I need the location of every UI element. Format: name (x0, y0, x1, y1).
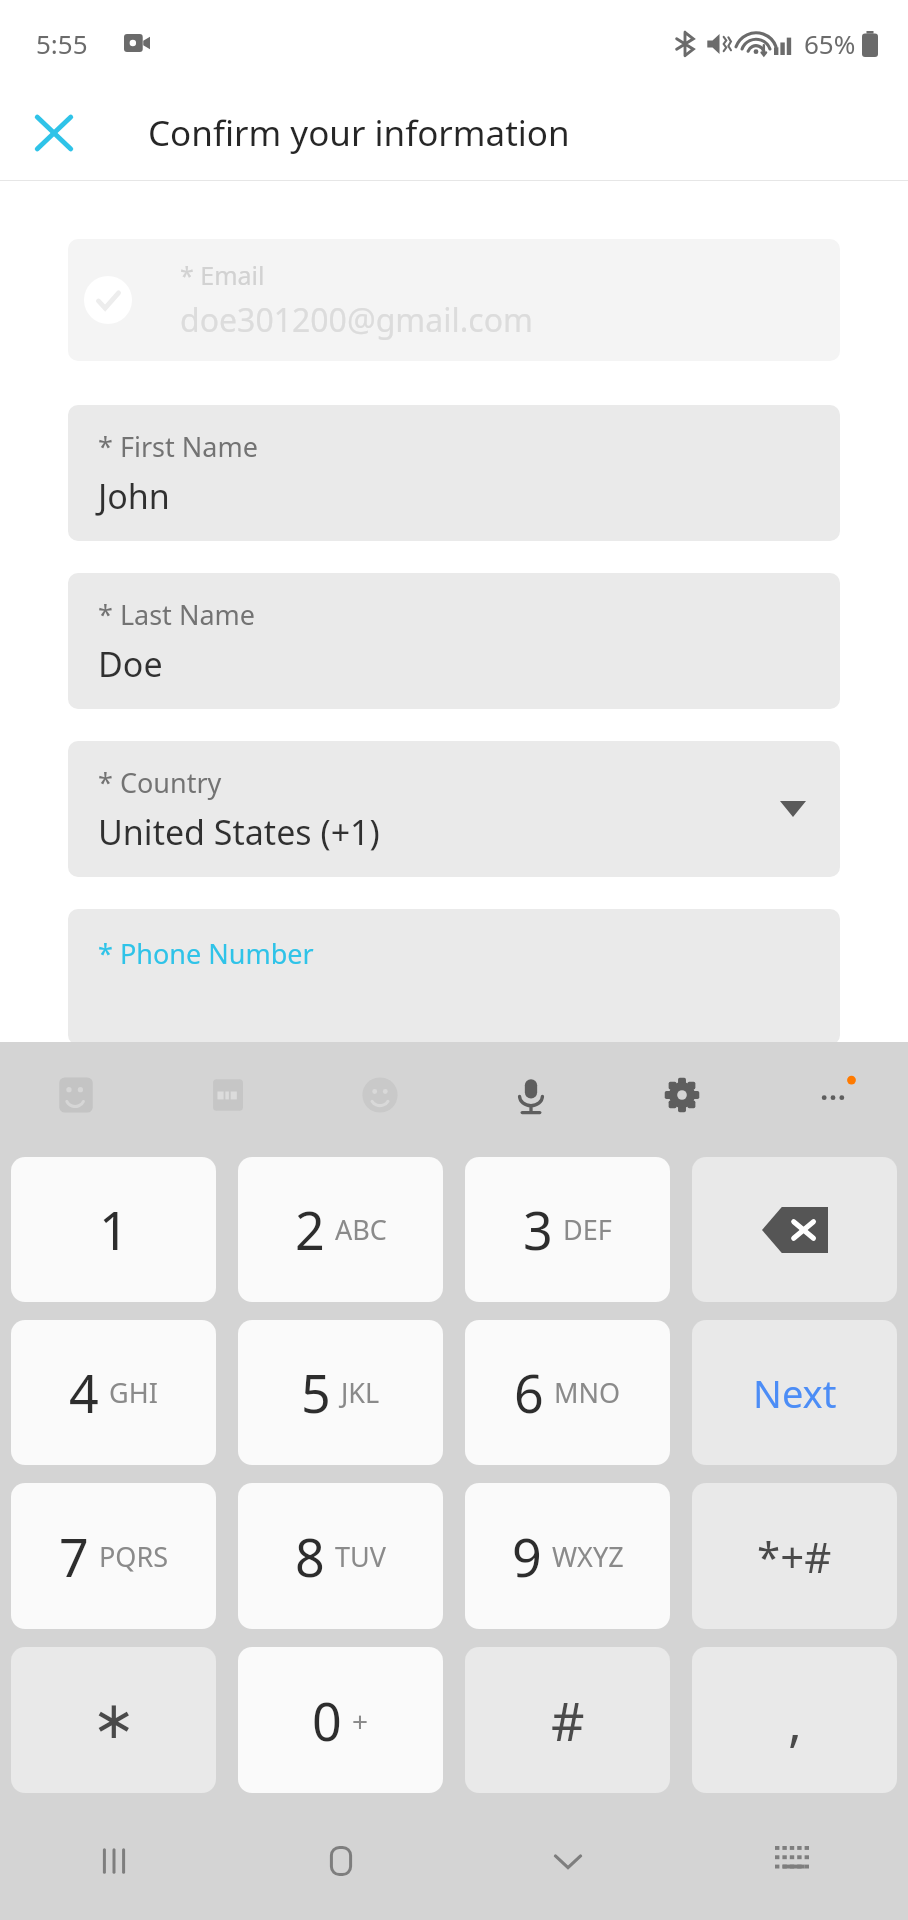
staticText: *+# (757, 1528, 832, 1585)
staticText: ABC (335, 1211, 387, 1248)
button[interactable]: GIF (152, 1042, 304, 1148)
staticText: MNO (554, 1374, 621, 1411)
staticText: 65% (804, 26, 856, 61)
staticText: 0 (312, 1685, 342, 1756)
button[interactable]: Voice input (455, 1042, 606, 1148)
staticText: 5 (301, 1357, 331, 1428)
staticText: , (788, 1685, 802, 1756)
button[interactable]: * Country (68, 741, 840, 877)
staticText: 1 (99, 1194, 129, 1265)
button[interactable]: 2 (238, 1157, 443, 1302)
staticText: * Phone Number (98, 935, 314, 972)
staticText: 4 (69, 1357, 99, 1428)
staticText: 5:55 (36, 26, 88, 61)
staticText: DEF (563, 1211, 612, 1248)
button[interactable]: More options (757, 1042, 908, 1148)
button[interactable]: , (692, 1647, 897, 1793)
button[interactable]: Home (227, 1802, 454, 1920)
staticText: WXYZ (552, 1538, 624, 1575)
staticText: doe301200@gmail.com (180, 298, 533, 342)
staticText: 3 (523, 1194, 553, 1265)
button[interactable]: Hide keyboard (454, 1802, 681, 1920)
staticText: United States (+1) (98, 809, 380, 855)
staticText: * Email (180, 258, 265, 292)
staticText: John (98, 473, 170, 519)
button[interactable]: Stickers (0, 1042, 152, 1148)
button[interactable]: Next (692, 1320, 897, 1465)
staticText: PQRS (99, 1538, 169, 1575)
staticText: # (551, 1685, 585, 1756)
button[interactable]: * First Name (68, 405, 840, 541)
staticText: GHI (109, 1374, 158, 1411)
button[interactable]: Close (12, 91, 96, 175)
other: Select country (780, 801, 806, 817)
staticText: 7 (59, 1521, 89, 1592)
button[interactable]: Keyboard settings (606, 1042, 757, 1148)
staticText: Confirm your information (148, 109, 570, 157)
button[interactable]: 9 (465, 1483, 670, 1629)
staticText: JKL (341, 1374, 380, 1411)
staticText: TUV (335, 1538, 386, 1575)
button[interactable]: Recents (0, 1802, 227, 1920)
button[interactable]: * Email (68, 239, 840, 361)
button[interactable]: *+# (692, 1483, 897, 1629)
staticText: 2 (295, 1194, 325, 1265)
button[interactable]: 5 (238, 1320, 443, 1465)
button[interactable]: * Last Name (68, 573, 840, 709)
button[interactable]: 8 (238, 1483, 443, 1629)
staticText: 8 (295, 1521, 325, 1592)
staticText: 9 (512, 1521, 542, 1592)
button[interactable]: * Phone Number (68, 909, 840, 1045)
staticText: Next (753, 1367, 837, 1419)
button[interactable]: 3 (465, 1157, 670, 1302)
button[interactable]: 7 (11, 1483, 216, 1629)
staticText: 6 (514, 1357, 544, 1428)
button[interactable]: 6 (465, 1320, 670, 1465)
staticText: ∗ (92, 1690, 136, 1751)
button[interactable]: # (465, 1647, 670, 1793)
button[interactable]: ∗ (11, 1647, 216, 1793)
staticText: * Last Name (98, 596, 256, 633)
button[interactable]: Backspace (692, 1157, 897, 1302)
button[interactable]: 4 (11, 1320, 216, 1465)
staticText: * Country (98, 764, 222, 801)
staticText: Doe (98, 641, 163, 687)
button[interactable]: Change keyboard (681, 1802, 908, 1920)
staticText: + (352, 1702, 369, 1740)
staticText: * First Name (98, 428, 258, 465)
button[interactable]: 1 (11, 1157, 216, 1302)
button[interactable]: 0 (238, 1647, 443, 1793)
